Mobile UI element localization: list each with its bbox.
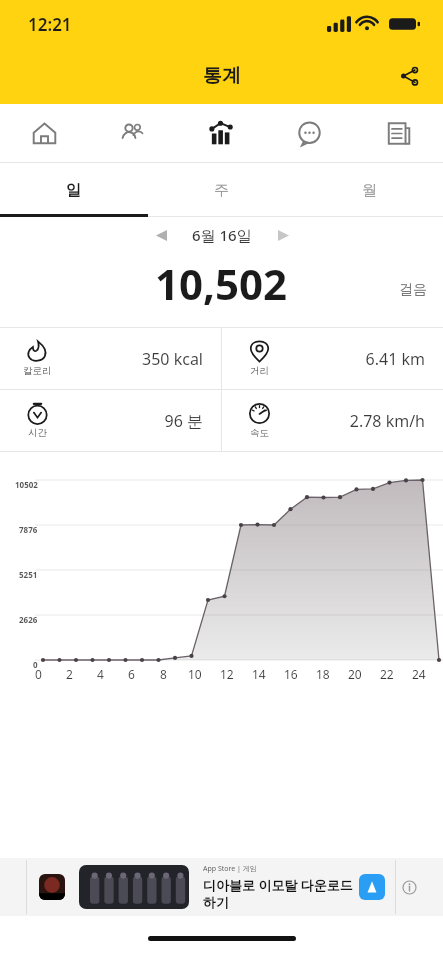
button[interactable]: News bbox=[354, 104, 443, 162]
staticText: 12 bbox=[220, 666, 234, 682]
staticText: 22 bbox=[380, 666, 394, 682]
staticText: App Store | 게임 bbox=[203, 864, 257, 874]
button[interactable]: Chat bbox=[265, 104, 354, 162]
staticText: 속도 bbox=[250, 427, 269, 439]
staticText: 20 bbox=[348, 666, 362, 682]
staticText: 거리 bbox=[250, 365, 269, 377]
button[interactable]: 월 bbox=[295, 163, 443, 217]
button[interactable]: Share bbox=[387, 54, 431, 98]
staticText: 4 bbox=[97, 666, 104, 682]
staticText: 디아블로 이모탈 다운로드하기 bbox=[203, 876, 359, 911]
button[interactable]: Friends bbox=[88, 104, 176, 162]
staticText: 월 bbox=[362, 181, 377, 200]
staticText: 10502 bbox=[15, 479, 38, 490]
staticText: 96 분 bbox=[164, 410, 203, 432]
staticText: 통계 bbox=[203, 64, 241, 88]
staticText: 6 bbox=[128, 666, 135, 682]
staticText: 16 bbox=[284, 666, 298, 682]
staticText: 0 bbox=[33, 659, 38, 670]
button[interactable]: Next day bbox=[266, 218, 300, 252]
staticText: 0 bbox=[35, 666, 42, 682]
staticText: 걸음 bbox=[399, 281, 427, 299]
staticText: 8 bbox=[160, 666, 167, 682]
staticText: 10,502 bbox=[155, 255, 288, 312]
button[interactable]: Home bbox=[0, 104, 88, 162]
button[interactable]: 주 bbox=[147, 163, 295, 217]
staticText: 10 bbox=[188, 666, 202, 682]
button[interactable]: 시간 bbox=[0, 390, 221, 451]
button[interactable]: Statistics bbox=[176, 104, 265, 162]
button[interactable]: Previous day bbox=[144, 218, 178, 252]
staticText: 일 bbox=[66, 181, 81, 200]
staticText: 14 bbox=[252, 666, 266, 682]
staticText: 5251 bbox=[19, 569, 38, 580]
staticText: 7876 bbox=[19, 524, 38, 535]
staticText: 2.78 km/h bbox=[349, 410, 425, 432]
staticText: 24 bbox=[412, 666, 426, 682]
staticText: 6월 16일 bbox=[192, 225, 252, 245]
button[interactable]: 속도 bbox=[222, 390, 443, 451]
staticText: 18 bbox=[316, 666, 330, 682]
staticText: 2 bbox=[66, 666, 73, 682]
staticText: 시간 bbox=[28, 427, 47, 439]
staticText: 350 kcal bbox=[142, 348, 203, 370]
button[interactable]: 거리 bbox=[222, 328, 443, 389]
button[interactable]: 일 bbox=[0, 163, 147, 217]
staticText: 12:21 bbox=[28, 13, 72, 36]
button[interactable]: App Store | 게임 bbox=[0, 858, 443, 916]
staticText: 칼로리 bbox=[23, 365, 52, 377]
staticText: 2626 bbox=[19, 614, 38, 625]
staticText: 주 bbox=[214, 181, 229, 200]
staticText: 6.41 km bbox=[365, 348, 425, 370]
button[interactable]: 칼로리 bbox=[0, 328, 221, 389]
